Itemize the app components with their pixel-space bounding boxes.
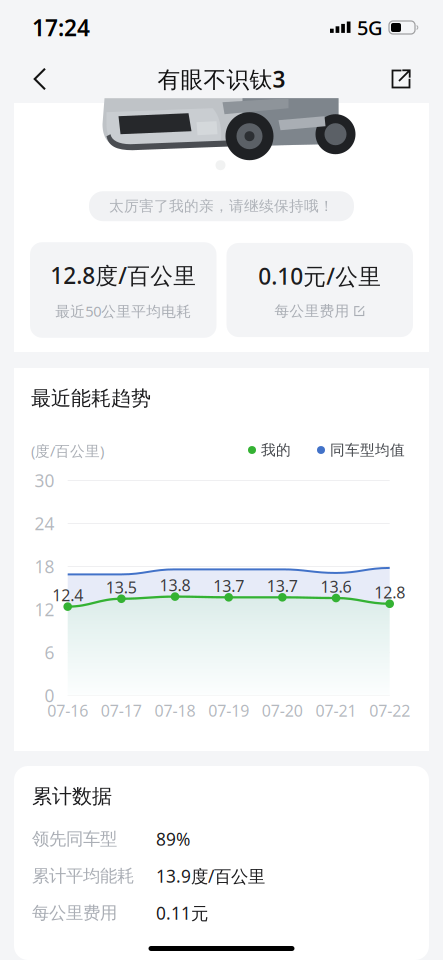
staticText: 13.9度/百公里 (156, 865, 265, 888)
staticText: 07-21 (315, 700, 356, 721)
staticText: 13.7 (213, 575, 244, 596)
staticText: 5G (357, 14, 383, 41)
staticText: 同车型均值 (330, 441, 405, 459)
staticText: 12.8 (374, 582, 405, 603)
staticText: 13.6 (320, 576, 351, 597)
button[interactable]: 12.8度/百公里 (30, 242, 216, 338)
staticText: 18 (34, 555, 54, 578)
staticText: 13.7 (267, 575, 298, 596)
staticText: (度/百公里) (31, 441, 104, 460)
staticText: 每公里费用 (274, 302, 349, 320)
button[interactable]: Back (17, 56, 63, 102)
staticText: 12 (34, 598, 54, 621)
staticText: 07-20 (262, 700, 303, 721)
staticText: 07-16 (47, 700, 88, 721)
staticText: 0 (44, 684, 54, 707)
staticText: 累计平均能耗 (32, 865, 134, 887)
staticText: 累计数据 (32, 784, 112, 809)
staticText: 领先同车型 (32, 828, 117, 850)
button[interactable]: 0.10元/公里 (226, 243, 413, 337)
staticText: 0.10元/公里 (258, 261, 381, 291)
staticText: 13.8 (159, 574, 190, 596)
staticText: 6 (44, 641, 54, 664)
staticText: 07-17 (101, 700, 142, 721)
staticText: 有眼不识钛3 (157, 64, 285, 94)
staticText: 最近50公里平均电耗 (55, 301, 191, 321)
staticText: 我的 (261, 441, 291, 459)
staticText: 17:24 (32, 12, 90, 42)
staticText: 0.11元 (156, 902, 208, 925)
staticText: 最近能耗趋势 (31, 386, 151, 411)
staticText: 89% (156, 828, 190, 851)
staticText: 12.8度/百公里 (50, 260, 196, 290)
staticText: 每公里费用 (32, 902, 117, 924)
staticText: 12.4 (52, 584, 83, 606)
staticText: 13.5 (106, 577, 137, 598)
staticText: 24 (34, 512, 54, 535)
staticText: 07-19 (208, 700, 249, 721)
staticText: 太厉害了我的亲，请继续保持哦！ (109, 197, 334, 215)
button[interactable]: Share (378, 56, 424, 102)
staticText: 07-18 (154, 700, 195, 721)
staticText: 30 (34, 469, 54, 492)
staticText: 07-22 (369, 700, 410, 721)
